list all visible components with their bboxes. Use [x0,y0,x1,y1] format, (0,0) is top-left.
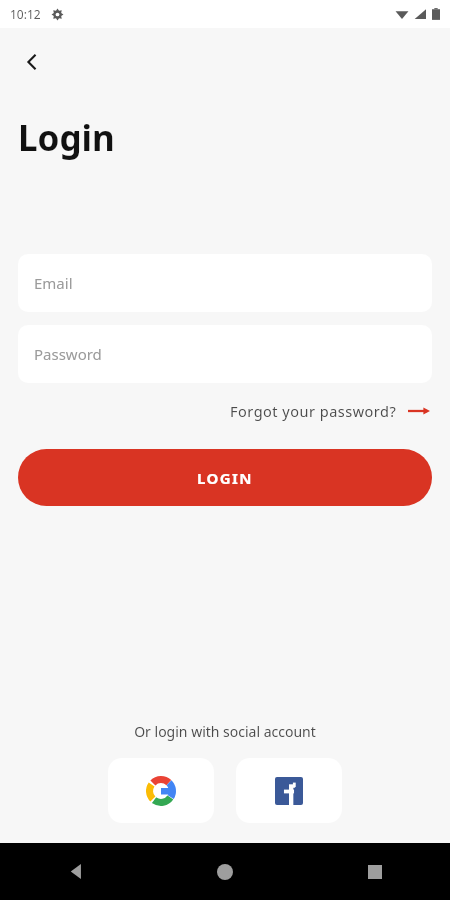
staticText: LOGIN [197,468,253,488]
staticText: 10:12 [10,6,41,22]
button[interactable]: Home [150,843,300,900]
button[interactable]: Sign in with Google [108,758,214,823]
staticText: Password [34,344,102,364]
button[interactable]: LOGIN [18,449,432,506]
button[interactable]: Email [18,254,432,312]
staticText: Or login with social account [134,722,316,741]
button[interactable]: Password [18,325,432,383]
button[interactable]: Recent apps [300,843,450,900]
button[interactable]: Sign in with Facebook [236,758,342,823]
staticText: Login [18,114,115,162]
button[interactable]: Back [10,40,54,84]
staticText: Email [34,273,73,293]
button[interactable]: Forgot your password? [228,397,432,425]
staticText: Forgot your password? [230,401,397,421]
button[interactable]: Back [0,843,150,900]
